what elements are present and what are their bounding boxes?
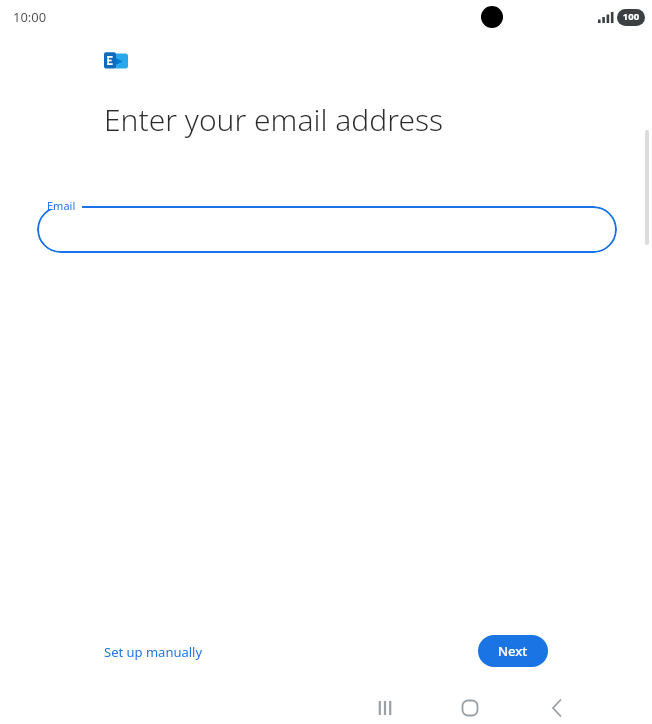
staticText: Set up manually (104, 643, 203, 661)
staticText: Next (498, 642, 528, 660)
button[interactable]: Recents (363, 686, 407, 724)
staticText: 10:00 (13, 8, 47, 26)
staticText: Enter your email address (104, 99, 444, 140)
button[interactable]: Next (478, 635, 548, 667)
button[interactable]: Home (448, 686, 492, 724)
button[interactable] (37, 206, 617, 253)
staticText: 100 (617, 10, 645, 25)
button[interactable]: Back (535, 686, 579, 724)
button[interactable]: Set up manually (96, 638, 211, 666)
staticText: Email (47, 198, 76, 213)
